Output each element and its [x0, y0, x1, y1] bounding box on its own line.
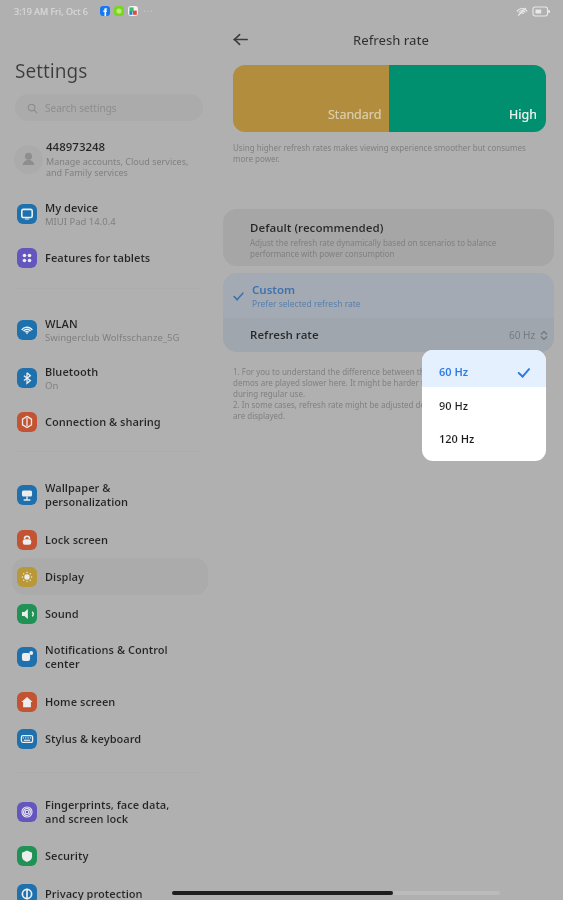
- button[interactable]: [422, 387, 546, 424]
- staticText: Settings: [15, 58, 88, 84]
- button[interactable]: High: [389, 65, 546, 132]
- staticText: Stylus & keyboard: [45, 731, 142, 746]
- staticText: Swingerclub Wolfsschanze_5G: [45, 331, 180, 344]
- button[interactable]: [422, 424, 546, 461]
- button[interactable]: Default (recommended): [223, 209, 554, 266]
- staticText: 3:19 AM Fri, Oct 6: [14, 5, 88, 17]
- staticText: Privacy protection: [45, 886, 143, 900]
- staticText: 120 Hz: [439, 431, 475, 446]
- staticText: Prefer selected refresh rate: [252, 298, 361, 310]
- button[interactable]: [422, 350, 546, 387]
- staticText: Notifications & Control center: [45, 642, 168, 671]
- staticText: Sound: [45, 606, 79, 621]
- button[interactable]: Bluetooth: [12, 359, 208, 396]
- button[interactable]: Features for tablets: [12, 239, 208, 276]
- staticText: Refresh rate: [250, 327, 319, 343]
- staticText: Connection & sharing: [45, 414, 161, 429]
- staticText: Fingerprints, face data, and screen lock: [45, 797, 170, 826]
- staticText: Display: [45, 569, 85, 584]
- button[interactable]: Search settings: [15, 94, 203, 121]
- staticText: 90 Hz: [439, 398, 469, 413]
- button[interactable]: WLAN: [12, 311, 208, 348]
- staticText: Wallpaper & personalization: [45, 480, 129, 509]
- button[interactable]: Connection & sharing: [12, 403, 208, 440]
- button[interactable]: 448973248: [0, 136, 220, 182]
- button[interactable]: Fingerprints, face data, and screen lock: [12, 793, 208, 830]
- button[interactable]: Sound: [12, 595, 208, 632]
- button[interactable]: Privacy protection: [12, 875, 208, 900]
- staticText: High: [509, 106, 537, 123]
- staticText: Search settings: [45, 101, 117, 115]
- staticText: 60 Hz: [439, 364, 469, 379]
- staticText: My device: [45, 200, 99, 215]
- staticText: Refresh rate: [353, 31, 429, 49]
- button[interactable]: Wallpaper & personalization: [12, 476, 208, 513]
- staticText: Default (recommended): [250, 220, 384, 236]
- staticText: MIUI Pad 14.0.4: [45, 215, 116, 228]
- button[interactable]: Standard: [233, 65, 389, 132]
- staticText: Manage accounts, Cloud services, and Fam…: [46, 155, 189, 179]
- button[interactable]: Stylus & keyboard: [12, 720, 208, 757]
- button[interactable]: Notifications & Control center: [12, 638, 208, 675]
- staticText: Custom: [252, 282, 296, 298]
- button[interactable]: Security: [12, 837, 208, 874]
- button[interactable]: Home screen: [12, 683, 208, 720]
- staticText: WLAN: [45, 316, 78, 331]
- staticText: 1. For you to understand the difference …: [233, 366, 510, 421]
- staticText: Features for tablets: [45, 250, 151, 265]
- button[interactable]: My device: [12, 195, 208, 232]
- staticText: Bluetooth: [45, 364, 99, 379]
- button[interactable]: Refresh rate: [223, 318, 554, 352]
- staticText: 60 Hz: [509, 328, 536, 342]
- button[interactable]: Back: [227, 26, 253, 52]
- button[interactable]: Custom: [223, 273, 554, 318]
- staticText: Home screen: [45, 694, 116, 709]
- staticText: Standard: [328, 106, 382, 123]
- staticText: Using higher refresh rates makes viewing…: [233, 142, 526, 164]
- button[interactable]: Display: [12, 558, 208, 595]
- staticText: Security: [45, 848, 89, 863]
- staticText: On: [45, 379, 59, 392]
- staticText: Lock screen: [45, 532, 109, 547]
- staticText: 448973248: [46, 139, 106, 155]
- button[interactable]: Lock screen: [12, 521, 208, 558]
- staticText: Adjust the refresh rate dynamically base…: [250, 237, 497, 259]
